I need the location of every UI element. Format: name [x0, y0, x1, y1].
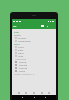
button[interactable]: Sound	[12, 60, 56, 63]
staticText: Silent	[19, 69, 26, 72]
button[interactable]: Snooze	[12, 66, 56, 69]
button[interactable]: Navigate up	[13, 25, 17, 28]
button[interactable]: Color	[12, 45, 56, 48]
button[interactable]: Notification	[12, 39, 56, 42]
staticText: Set	[13, 25, 17, 28]
staticText: Auto	[18, 54, 24, 57]
button[interactable]: Silent	[12, 69, 56, 72]
staticText: Vibrate	[19, 63, 28, 66]
staticText: Alarm	[14, 33, 21, 36]
button[interactable]: System	[12, 36, 56, 39]
staticText: Style	[14, 42, 20, 45]
staticText: Color	[18, 45, 25, 48]
staticText: Notification	[18, 39, 32, 42]
staticText: Advanced	[15, 57, 26, 60]
staticText: Dark	[18, 48, 24, 51]
button[interactable]: Auto	[12, 54, 56, 57]
button[interactable]: Light	[12, 51, 56, 54]
staticText: About Version 1.2	[14, 72, 35, 75]
button[interactable]: Dark	[12, 48, 56, 51]
staticText: Snooze	[19, 66, 28, 69]
staticText: Flag	[14, 30, 19, 33]
staticText: Sound	[19, 60, 27, 63]
staticText: Light	[18, 51, 24, 54]
button[interactable]: Vibrate	[12, 63, 56, 66]
staticText: System	[18, 36, 27, 39]
